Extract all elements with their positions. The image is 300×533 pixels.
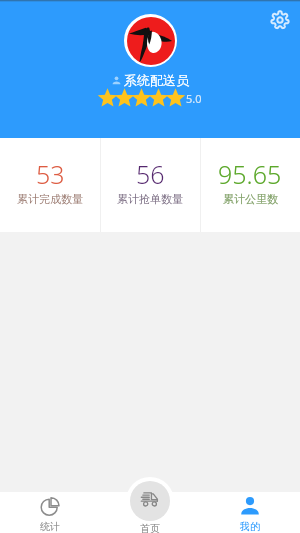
- button[interactable]: 53: [0, 138, 100, 232]
- button[interactable]: 统计: [0, 492, 100, 533]
- button[interactable]: 我的: [200, 492, 300, 533]
- staticText: 统计: [40, 520, 60, 533]
- staticText: 56: [136, 157, 165, 191]
- button[interactable]: 95.65: [200, 138, 300, 232]
- button[interactable]: Settings: [266, 6, 294, 34]
- button[interactable]: 首页: [130, 481, 170, 533]
- staticText: 我的: [240, 520, 260, 533]
- staticText: 53: [36, 157, 65, 191]
- button[interactable]: 56: [100, 138, 200, 232]
- staticText: 累计抢单数量: [117, 192, 183, 206]
- staticText: 首页: [140, 522, 160, 533]
- staticText: 系统配送员: [124, 72, 189, 88]
- staticText: 95.65: [218, 157, 282, 191]
- staticText: 5.0: [186, 91, 202, 106]
- staticText: 累计完成数量: [17, 192, 83, 206]
- staticText: 累计公里数: [223, 192, 278, 206]
